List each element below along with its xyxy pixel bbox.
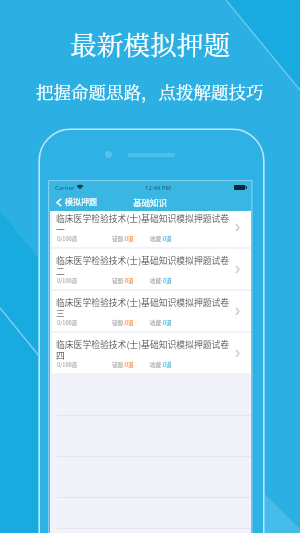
staticText: 临床医学检验技术(士)基础知识模拟押题试卷三	[56, 296, 235, 319]
staticText: 0道	[125, 235, 134, 242]
staticText: 收藏:	[150, 319, 163, 326]
staticText: 0道	[125, 361, 134, 368]
button[interactable]: 临床医学检验技术(士)基础知识模拟押题试卷一	[52, 211, 251, 247]
staticText: 0/100道	[57, 361, 78, 368]
staticText: 0道	[163, 319, 172, 326]
staticText: 错题:	[112, 319, 125, 326]
staticText: 临床医学检验技术(士)基础知识模拟押题试卷四	[56, 338, 235, 361]
button[interactable]: 临床医学检验技术(士)基础知识模拟押题试卷四	[52, 333, 251, 373]
staticText: 收藏:	[150, 361, 163, 368]
button[interactable]: 临床医学检验技术(士)基础知识模拟押题试卷三	[52, 291, 251, 331]
staticText: 0道	[163, 235, 172, 242]
staticText: 基础知识	[133, 196, 168, 208]
staticText: 临床医学检验技术(士)基础知识模拟押题试卷一	[56, 212, 235, 235]
staticText: 0/100道	[57, 277, 78, 284]
button[interactable]: 临床医学检验技术(士)基础知识模拟押题试卷二	[52, 249, 251, 289]
staticText: 把握命题思路，点拨解题技巧	[36, 79, 264, 104]
staticText: 0道	[163, 361, 172, 368]
button[interactable]: 返回 模拟押题	[56, 193, 97, 211]
staticText: 0/100道	[57, 319, 78, 326]
staticText: 0道	[125, 319, 134, 326]
staticText: 错题:	[112, 361, 125, 368]
staticText: 收藏:	[150, 235, 163, 242]
staticText: 错题:	[112, 277, 125, 284]
staticText: 0道	[125, 277, 134, 284]
staticText: Carrier	[55, 184, 75, 192]
staticText: 0/100道	[57, 235, 78, 242]
staticText: 0道	[163, 277, 172, 284]
staticText: 收藏:	[150, 277, 163, 284]
staticText: 12:49 PM	[145, 184, 171, 192]
staticText: 错题:	[112, 235, 125, 242]
staticText: 临床医学检验技术(士)基础知识模拟押题试卷二	[56, 254, 235, 277]
staticText: 最新模拟押题	[70, 24, 231, 62]
staticText: 模拟押题	[65, 196, 97, 208]
